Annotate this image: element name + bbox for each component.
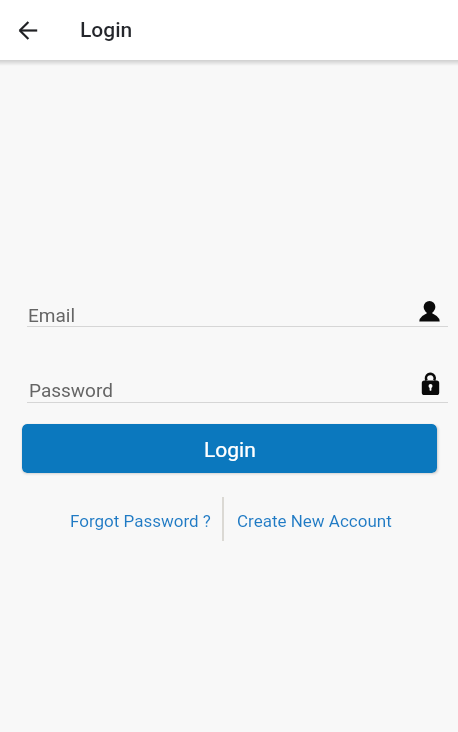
button[interactable]: Login [22,424,437,473]
button[interactable]: Create New Account [232,500,397,540]
staticText: Password [29,379,113,401]
button[interactable]: Password [20,370,448,406]
staticText: Email [28,304,76,326]
button[interactable]: Forgot Password ? [55,500,225,540]
staticText: Login [80,18,133,43]
button[interactable] [4,6,52,54]
staticText: Create New Account [237,511,392,531]
button[interactable]: Email [20,295,448,330]
staticText: Login [204,438,256,463]
staticText: Forgot Password ? [70,511,211,531]
